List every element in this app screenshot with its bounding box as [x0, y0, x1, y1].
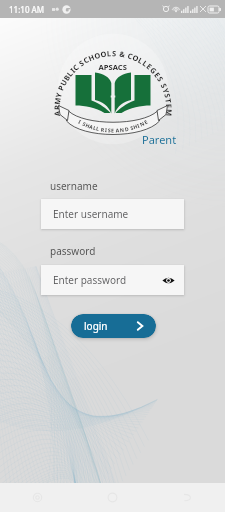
button[interactable]: Enter username: [41, 199, 184, 229]
staticText: 11:10 AM: [9, 4, 45, 15]
staticText: Enter username: [53, 207, 129, 221]
button[interactable]: login: [71, 314, 156, 338]
staticText: username: [50, 179, 98, 193]
staticText: login: [84, 319, 108, 333]
staticText: Enter password: [53, 273, 127, 287]
staticText: Parent: [142, 132, 177, 147]
button[interactable]: Show password: [161, 273, 175, 287]
staticText: password: [50, 244, 96, 258]
button[interactable]: Enter password: [41, 265, 184, 295]
